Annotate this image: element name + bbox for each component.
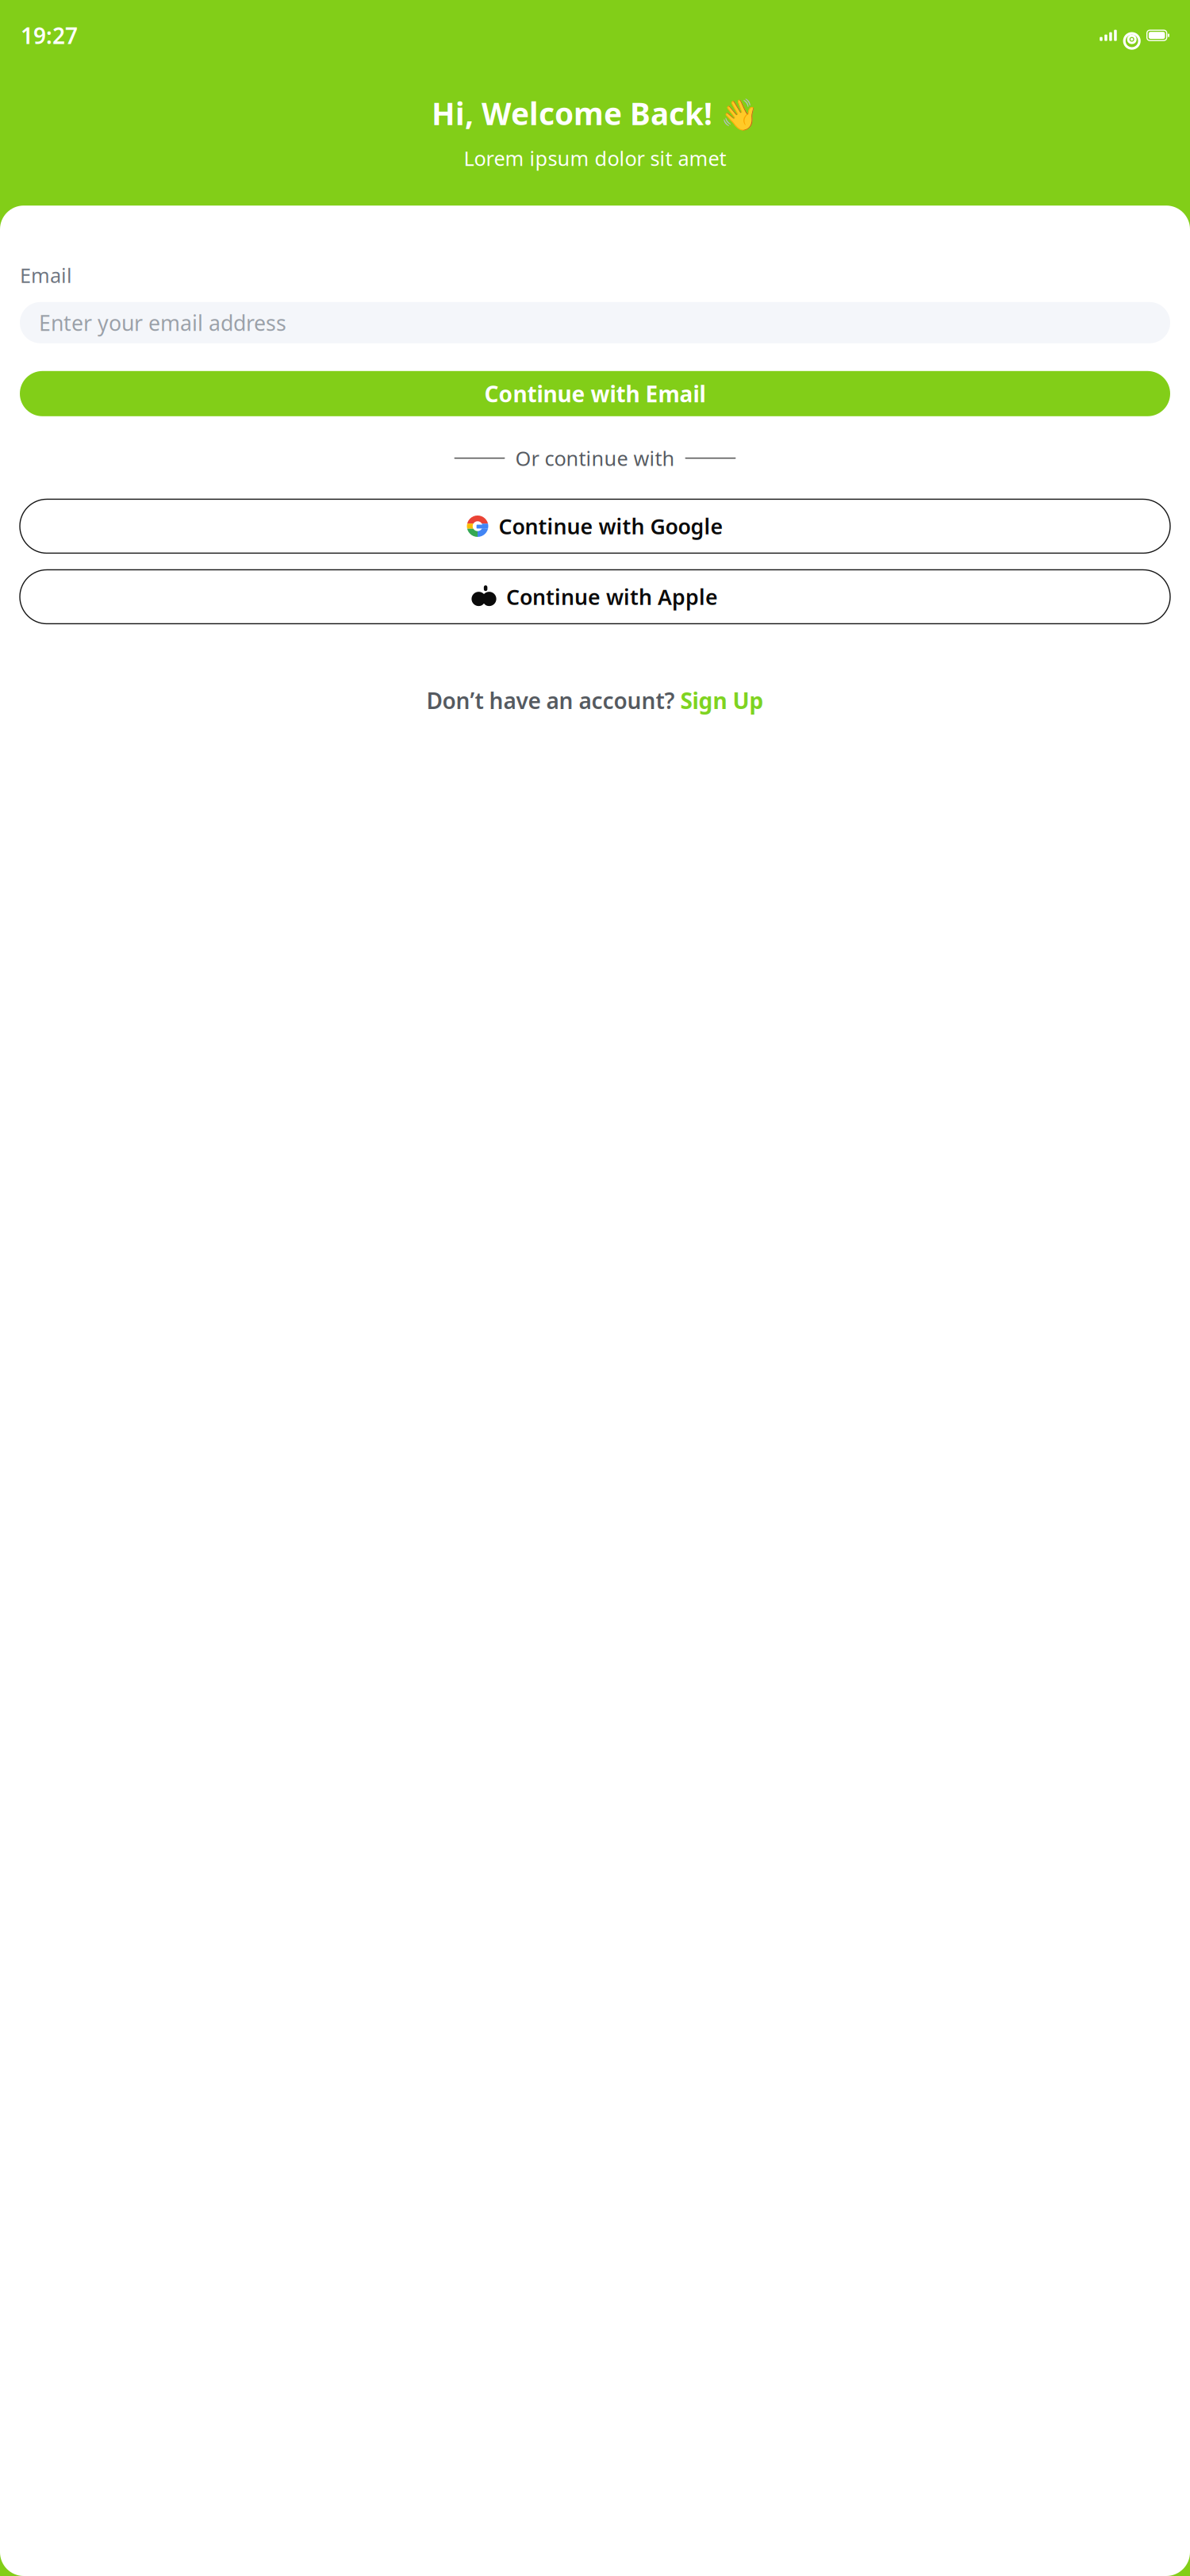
staticText: Lorem ipsum dolor sit amet — [464, 145, 726, 171]
staticText: Or continue with — [515, 445, 675, 471]
button[interactable]: Continue with Email — [20, 371, 1170, 416]
staticText: 19:27 — [21, 21, 78, 50]
staticText: Continue with Email — [484, 379, 706, 408]
staticText: Email — [20, 262, 72, 289]
button[interactable]: Enter your email address — [20, 302, 1170, 343]
staticText: Don’t have an account? — [426, 686, 675, 715]
staticText: Hi, Welcome Back! 👋 — [432, 93, 758, 134]
staticText: Continue with Google — [499, 512, 723, 540]
button[interactable]: Don’t have an account? — [20, 686, 1170, 715]
staticText: Continue with Apple — [506, 583, 718, 611]
staticText: Sign Up — [680, 686, 764, 715]
button[interactable]: Continue with Google — [20, 499, 1170, 553]
staticText: Enter your email address — [39, 309, 286, 337]
button[interactable]: Continue with Apple — [20, 570, 1170, 624]
